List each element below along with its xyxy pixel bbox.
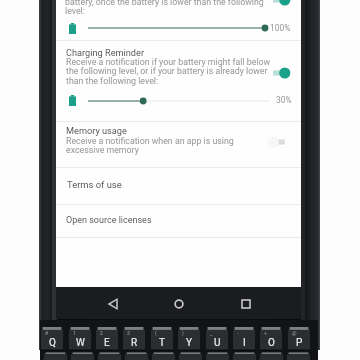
staticText: Memory usage [66,125,127,136]
staticText: Open source licenses [66,215,152,226]
staticText: Receive a notification when an app is us… [66,136,234,146]
staticText: W [76,337,85,349]
button[interactable]: Key Y [178,327,200,351]
button[interactable] [56,122,301,166]
staticText: I [243,337,246,349]
staticText: T [159,337,165,349]
staticText: Y [186,337,193,349]
staticText: ( [155,330,157,336]
button[interactable] [152,352,175,360]
staticText: excessive memory [66,145,139,155]
button[interactable] [260,352,283,360]
button[interactable]: Enabled switch [268,0,290,8]
staticText: Receive a notification if your battery m… [66,57,271,67]
button[interactable]: Key I [233,327,255,351]
staticText: 3 [127,330,130,336]
button[interactable] [98,352,121,360]
button[interactable] [206,352,229,360]
staticText: 30% [276,95,292,105]
button[interactable]: Key U [206,327,228,351]
button[interactable]: Enabled switch [268,65,290,81]
staticText: E [104,337,110,349]
button[interactable]: Battery level slider 30% [88,95,301,107]
button[interactable] [125,352,148,360]
staticText: O [268,337,275,349]
staticText: U [214,337,221,349]
button[interactable] [56,41,301,121]
button[interactable] [56,167,301,204]
button[interactable]: Disabled switch [268,134,290,150]
button[interactable]: Key P [288,327,310,351]
staticText: - [237,330,239,336]
button[interactable]: Key E [96,327,118,351]
staticText: level: [65,6,85,16]
button[interactable] [287,352,310,360]
button[interactable] [179,352,202,360]
staticText: Charging Reminder [66,47,145,58]
button[interactable] [56,205,301,236]
button[interactable] [233,352,256,360]
button[interactable]: Battery level slider 100% [88,22,301,34]
staticText: P [296,337,303,349]
staticText: + [264,330,267,336]
button[interactable]: Key R [123,327,145,351]
staticText: ) [182,330,184,336]
button[interactable]: Key Q [41,327,63,351]
button[interactable]: Key W [69,327,91,351]
button[interactable] [44,352,67,360]
button[interactable] [71,352,94,360]
staticText: @ [292,330,297,336]
staticText: 2 [100,330,103,336]
staticText: Terms of use [67,179,122,190]
staticText: Q [49,337,56,349]
staticText: 1 [73,330,76,336]
staticText: # [45,330,49,336]
button[interactable]: Back [104,295,122,313]
staticText: _ [210,330,213,336]
staticText: R [131,337,138,349]
button[interactable]: Key T [151,327,173,351]
staticText: than the following level: [66,76,159,86]
staticText: battery, once the battery is lower than … [65,0,264,7]
staticText: the following level, or if your battery … [66,66,268,76]
button[interactable]: Home [170,295,188,313]
staticText: 100% [270,23,291,33]
button[interactable]: Key O [260,327,282,351]
button[interactable]: Recent apps [237,295,255,313]
